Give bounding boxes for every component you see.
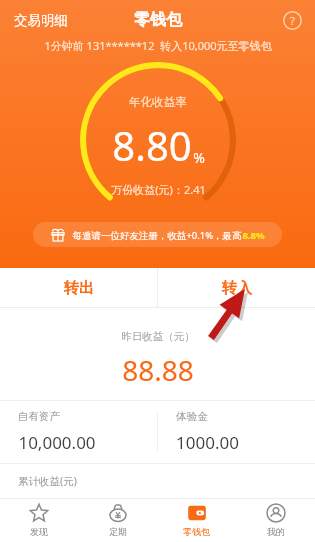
button[interactable]: 累计收益(元) — [0, 464, 315, 498]
staticText: 交易明细 — [14, 12, 68, 29]
staticText: 10,000.00 — [18, 431, 96, 454]
staticText: 发现 — [30, 526, 48, 537]
button[interactable]: 转入 — [158, 268, 315, 308]
staticText: 零钱包 — [183, 526, 210, 537]
staticText: ? — [290, 13, 295, 28]
staticText: 1000.00 — [176, 431, 239, 454]
button[interactable]: 定期 — [78, 498, 157, 542]
button[interactable]: 我的 — [236, 498, 315, 542]
staticText: 转出 — [64, 279, 94, 298]
staticText: 88.88 — [122, 351, 194, 389]
staticText: 8.80 — [112, 118, 192, 172]
staticText: 定期 — [109, 526, 127, 537]
staticText: 昨日收益（元） — [121, 330, 195, 343]
button[interactable]: Help — [279, 7, 305, 33]
staticText: 自有资产 — [18, 410, 60, 423]
staticText: 我的 — [267, 526, 285, 537]
staticText: 转入 — [222, 279, 252, 298]
staticText: 1分钟前 131******12 转入10,000元至零钱包 — [44, 38, 272, 53]
staticText: 累计收益(元) — [18, 474, 77, 488]
button[interactable]: 交易明细 — [10, 8, 72, 33]
button[interactable]: 转出 — [0, 268, 157, 308]
staticText: % — [193, 148, 205, 167]
staticText: 每邀请一位好友注册，收益+0.1%，最高 — [72, 229, 242, 242]
staticText: 零钱包 — [134, 10, 182, 30]
button[interactable]: 发现 — [0, 498, 78, 542]
staticText: 年化收益率 — [129, 95, 187, 109]
button[interactable]: 体验金 — [158, 401, 315, 463]
staticText: 8.8% — [242, 229, 265, 242]
button[interactable]: 每邀请一位好友注册，收益+0.1%，最高 — [33, 222, 282, 247]
staticText: 万份收益(元)：2.41 — [111, 182, 206, 197]
button[interactable]: 零钱包 — [157, 498, 236, 542]
button[interactable]: 自有资产 — [0, 401, 157, 463]
staticText: 体验金 — [176, 410, 208, 423]
